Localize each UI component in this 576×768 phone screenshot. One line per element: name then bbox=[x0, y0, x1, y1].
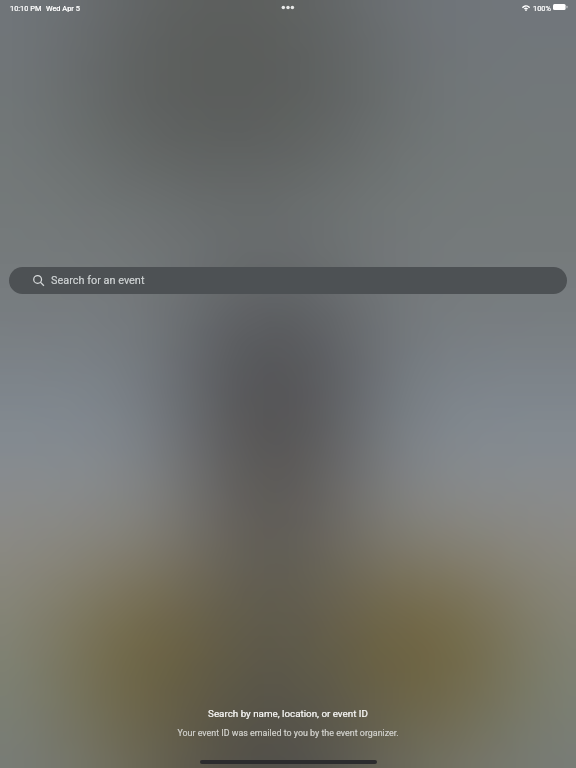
other: Search bbox=[33, 275, 44, 286]
staticText: 10:10 PM bbox=[10, 4, 42, 13]
staticText: Wed Apr 5 bbox=[46, 4, 80, 13]
staticText: Search for an event bbox=[51, 274, 145, 287]
staticText: Your event ID was emailed to you by the … bbox=[177, 728, 399, 738]
staticText: Search by name, location, or event ID bbox=[208, 708, 368, 719]
button[interactable]: Search bbox=[9, 267, 567, 294]
staticText: 100% bbox=[533, 4, 551, 13]
